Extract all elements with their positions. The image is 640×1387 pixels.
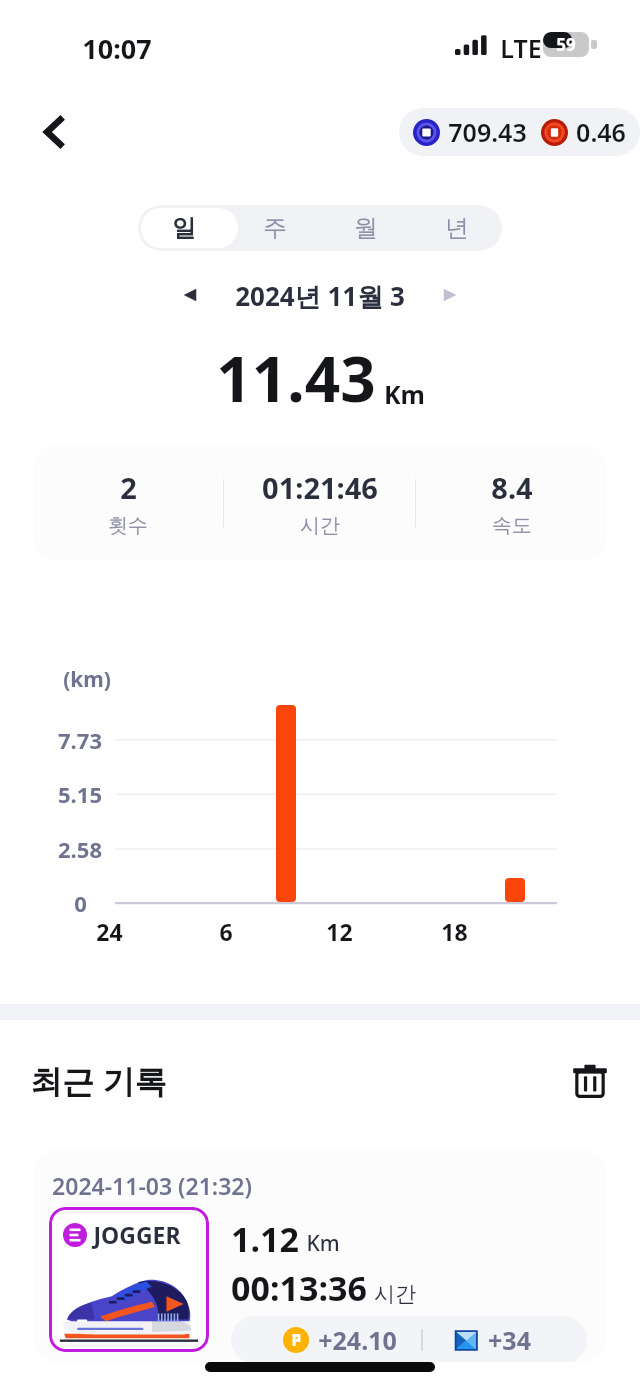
staticText: 5.15 (58, 779, 102, 809)
button[interactable]: 2 (33, 446, 607, 560)
staticText: 01:21:46 (262, 468, 378, 507)
button[interactable]: 월 (320, 205, 411, 251)
staticText: 7.73 (58, 725, 102, 755)
staticText: 59 (556, 33, 576, 56)
staticText: 00:13:36 (231, 1265, 367, 1311)
button[interactable]: +24.10 (231, 1316, 587, 1362)
staticText: 10:07 (82, 30, 152, 67)
button[interactable]: 709.43 (399, 108, 640, 156)
staticText: Km (384, 377, 425, 411)
staticText: JOGGER (93, 1219, 181, 1250)
staticText: 11.43 (216, 336, 376, 420)
staticText: 횟수 (108, 513, 148, 538)
staticText: LTE (500, 31, 542, 65)
button[interactable]: 2024-11-03 (21:32) (35, 1150, 605, 1362)
staticText: 12 (326, 916, 353, 947)
button[interactable]: Next day (426, 272, 472, 318)
staticText: 18 (441, 916, 468, 947)
staticText: +24.10 (318, 1323, 397, 1357)
button[interactable]: 년 (411, 205, 502, 251)
staticText: 1.12 (231, 1216, 299, 1262)
staticText: 최근 기록 (30, 1059, 167, 1103)
staticText: 709.43 (448, 115, 527, 149)
staticText: 6 (219, 916, 233, 947)
staticText: Km (306, 1229, 340, 1258)
button[interactable]: Previous day (168, 272, 214, 318)
staticText: 24 (96, 916, 123, 947)
staticText: 2024-11-03 (21:32) (52, 1170, 252, 1201)
staticText: 0.46 (576, 115, 626, 149)
staticText: 0 (74, 888, 87, 918)
button[interactable]: Delete records (562, 1055, 618, 1111)
staticText: +34 (488, 1323, 531, 1357)
staticText: 시간 (300, 513, 340, 538)
button[interactable]: 주 (229, 205, 320, 251)
staticText: 8.4 (491, 468, 533, 507)
button[interactable]: 일 (138, 205, 229, 251)
staticText: 시간 (374, 1281, 416, 1307)
staticText: 일 (172, 213, 196, 243)
staticText: 2 (120, 468, 137, 507)
staticText: 속도 (492, 513, 532, 538)
staticText: 2.58 (58, 834, 102, 864)
staticText: 주 (263, 213, 287, 243)
button[interactable]: Back (28, 104, 84, 160)
staticText: 월 (354, 213, 378, 243)
staticText: (km) (63, 665, 111, 694)
staticText: 년 (445, 213, 469, 243)
staticText: 2024년 11월 3일 (226, 278, 414, 314)
